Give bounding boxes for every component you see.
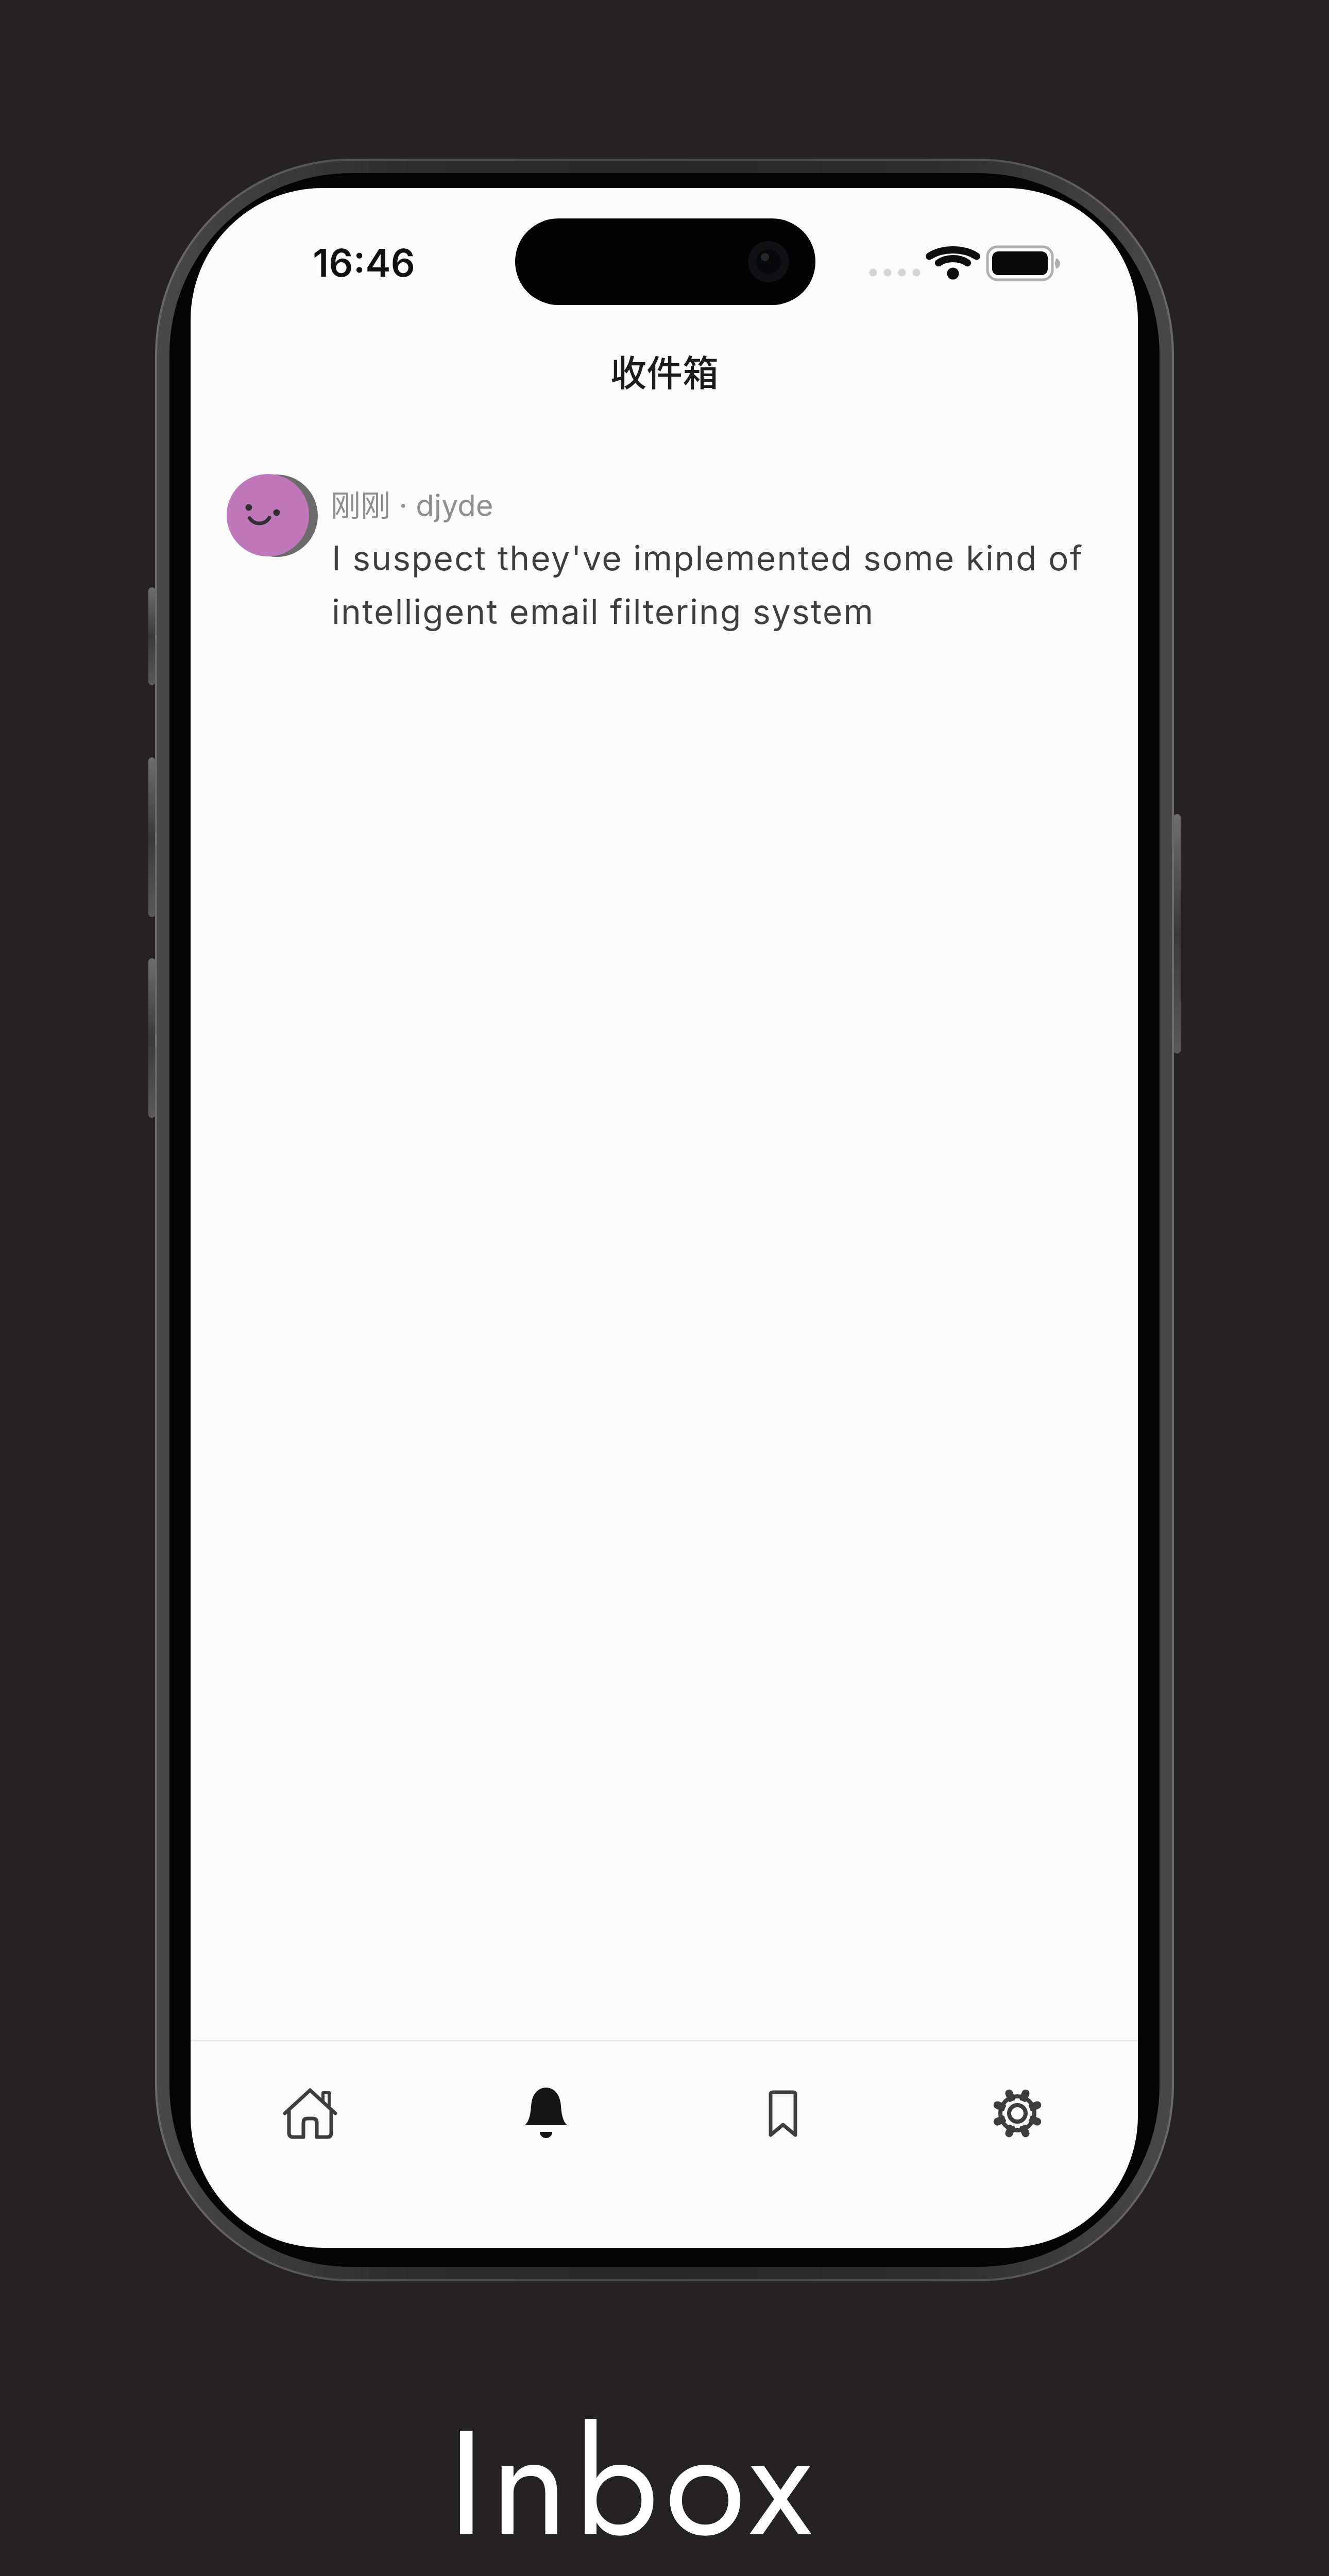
- button[interactable]: [901, 2041, 1137, 2191]
- button[interactable]: 刚刚 · djyde: [211, 466, 1118, 647]
- button[interactable]: [664, 2041, 901, 2191]
- staticText: 刚刚 · djyde: [331, 482, 493, 525]
- staticText: I suspect they've implemented some kind …: [332, 537, 1084, 632]
- staticText: 16:46: [313, 240, 415, 286]
- button[interactable]: [191, 2041, 427, 2191]
- button[interactable]: [428, 2041, 664, 2191]
- staticText: Inbox: [448, 2376, 818, 2576]
- staticText: 收件箱: [610, 345, 719, 397]
